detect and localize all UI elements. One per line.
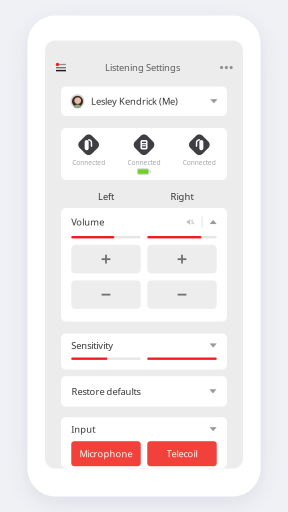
button[interactable]: Expand input bbox=[210, 427, 217, 431]
button[interactable]: Decrease volume bbox=[71, 280, 141, 309]
button[interactable]: Connected bbox=[61, 128, 116, 180]
button[interactable]: Expand sensitivity bbox=[210, 343, 217, 348]
staticText: Input bbox=[71, 423, 95, 435]
staticText: Restore defaults bbox=[71, 385, 140, 398]
button[interactable]: Lesley Kendrick (Me) bbox=[61, 86, 227, 116]
button[interactable]: Menu bbox=[55, 64, 65, 71]
staticText: Connected bbox=[127, 158, 160, 167]
button[interactable]: Connected bbox=[116, 128, 172, 180]
button[interactable]: Connected bbox=[172, 128, 227, 180]
button[interactable]: Left bbox=[71, 188, 141, 204]
staticText: Connected bbox=[183, 158, 216, 167]
staticText: Right bbox=[170, 190, 193, 203]
button[interactable]: Telecoil bbox=[147, 441, 217, 466]
staticText: Lesley Kendrick (Me) bbox=[91, 95, 178, 107]
staticText: Sensitivity bbox=[71, 339, 113, 352]
staticText: Connected bbox=[72, 158, 105, 167]
staticText: Left bbox=[98, 190, 114, 203]
button[interactable]: Restore defaults bbox=[61, 376, 227, 407]
button[interactable]: Increase volume bbox=[71, 245, 141, 273]
button[interactable]: Collapse volume bbox=[210, 220, 217, 224]
button[interactable]: More options bbox=[220, 60, 233, 75]
button[interactable]: Microphone bbox=[71, 441, 141, 466]
staticText: Listening Settings bbox=[105, 61, 180, 74]
staticText: Microphone bbox=[79, 447, 132, 460]
button[interactable]: Right bbox=[147, 188, 217, 204]
staticText: Volume bbox=[71, 216, 104, 228]
button[interactable]: Decrease volume bbox=[147, 280, 217, 309]
staticText: Telecoil bbox=[166, 447, 197, 460]
button[interactable]: Increase volume bbox=[147, 245, 217, 273]
